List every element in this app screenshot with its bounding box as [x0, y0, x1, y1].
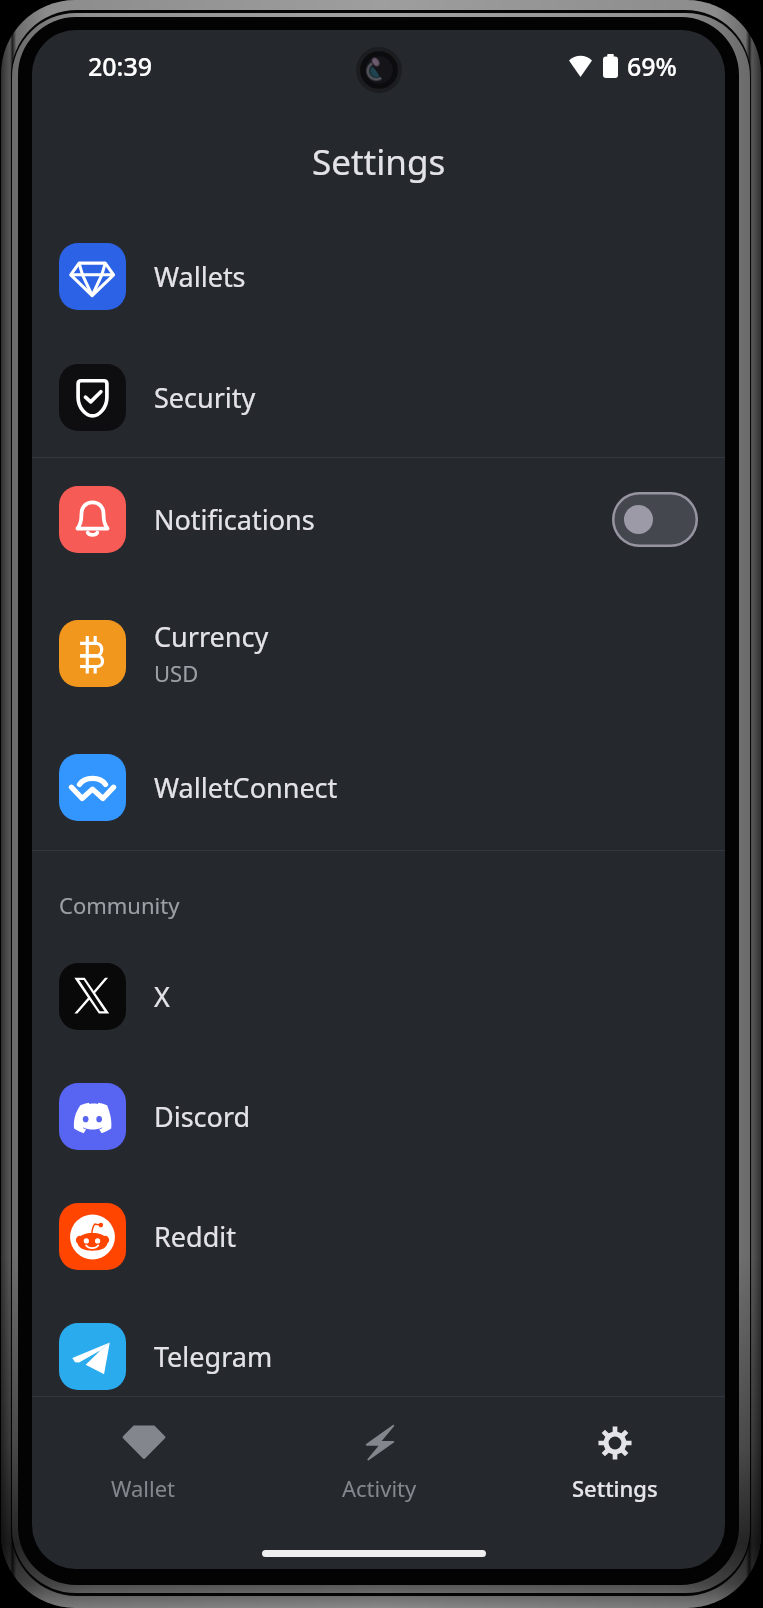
button[interactable]: Security — [32, 337, 725, 457]
staticText: USD — [154, 658, 199, 688]
staticText: Activity — [342, 1473, 417, 1503]
staticText: Telegram — [154, 1338, 273, 1375]
staticText: 20:39 — [88, 49, 153, 83]
button[interactable]: Activity — [265, 1397, 494, 1517]
button[interactable]: Settings — [500, 1397, 725, 1517]
staticText: Security — [154, 379, 256, 416]
button[interactable]: Notifications — [32, 458, 725, 581]
staticText: Reddit — [154, 1218, 236, 1255]
staticText: Wallet — [111, 1473, 176, 1503]
staticText: Notifications — [154, 501, 315, 538]
button[interactable]: Wallets — [32, 216, 725, 337]
staticText: 69% — [627, 49, 677, 83]
staticText: Settings — [312, 138, 446, 186]
staticText: X — [154, 978, 170, 1015]
staticText: Settings — [572, 1473, 658, 1503]
staticText: Currency — [154, 618, 269, 655]
button[interactable]: Currency — [32, 581, 725, 725]
button[interactable]: Discord — [32, 1056, 725, 1176]
button[interactable]: Reddit — [32, 1176, 725, 1296]
button[interactable]: Notifications toggle — [612, 492, 698, 547]
button[interactable]: WalletConnect — [32, 725, 725, 850]
staticText: Community — [59, 890, 180, 920]
button[interactable]: X — [32, 936, 725, 1056]
button[interactable]: Telegram — [32, 1296, 725, 1416]
staticText: Wallets — [154, 258, 246, 295]
staticText: WalletConnect — [154, 769, 338, 806]
button[interactable]: Wallet — [32, 1397, 258, 1517]
staticText: Discord — [154, 1098, 251, 1135]
